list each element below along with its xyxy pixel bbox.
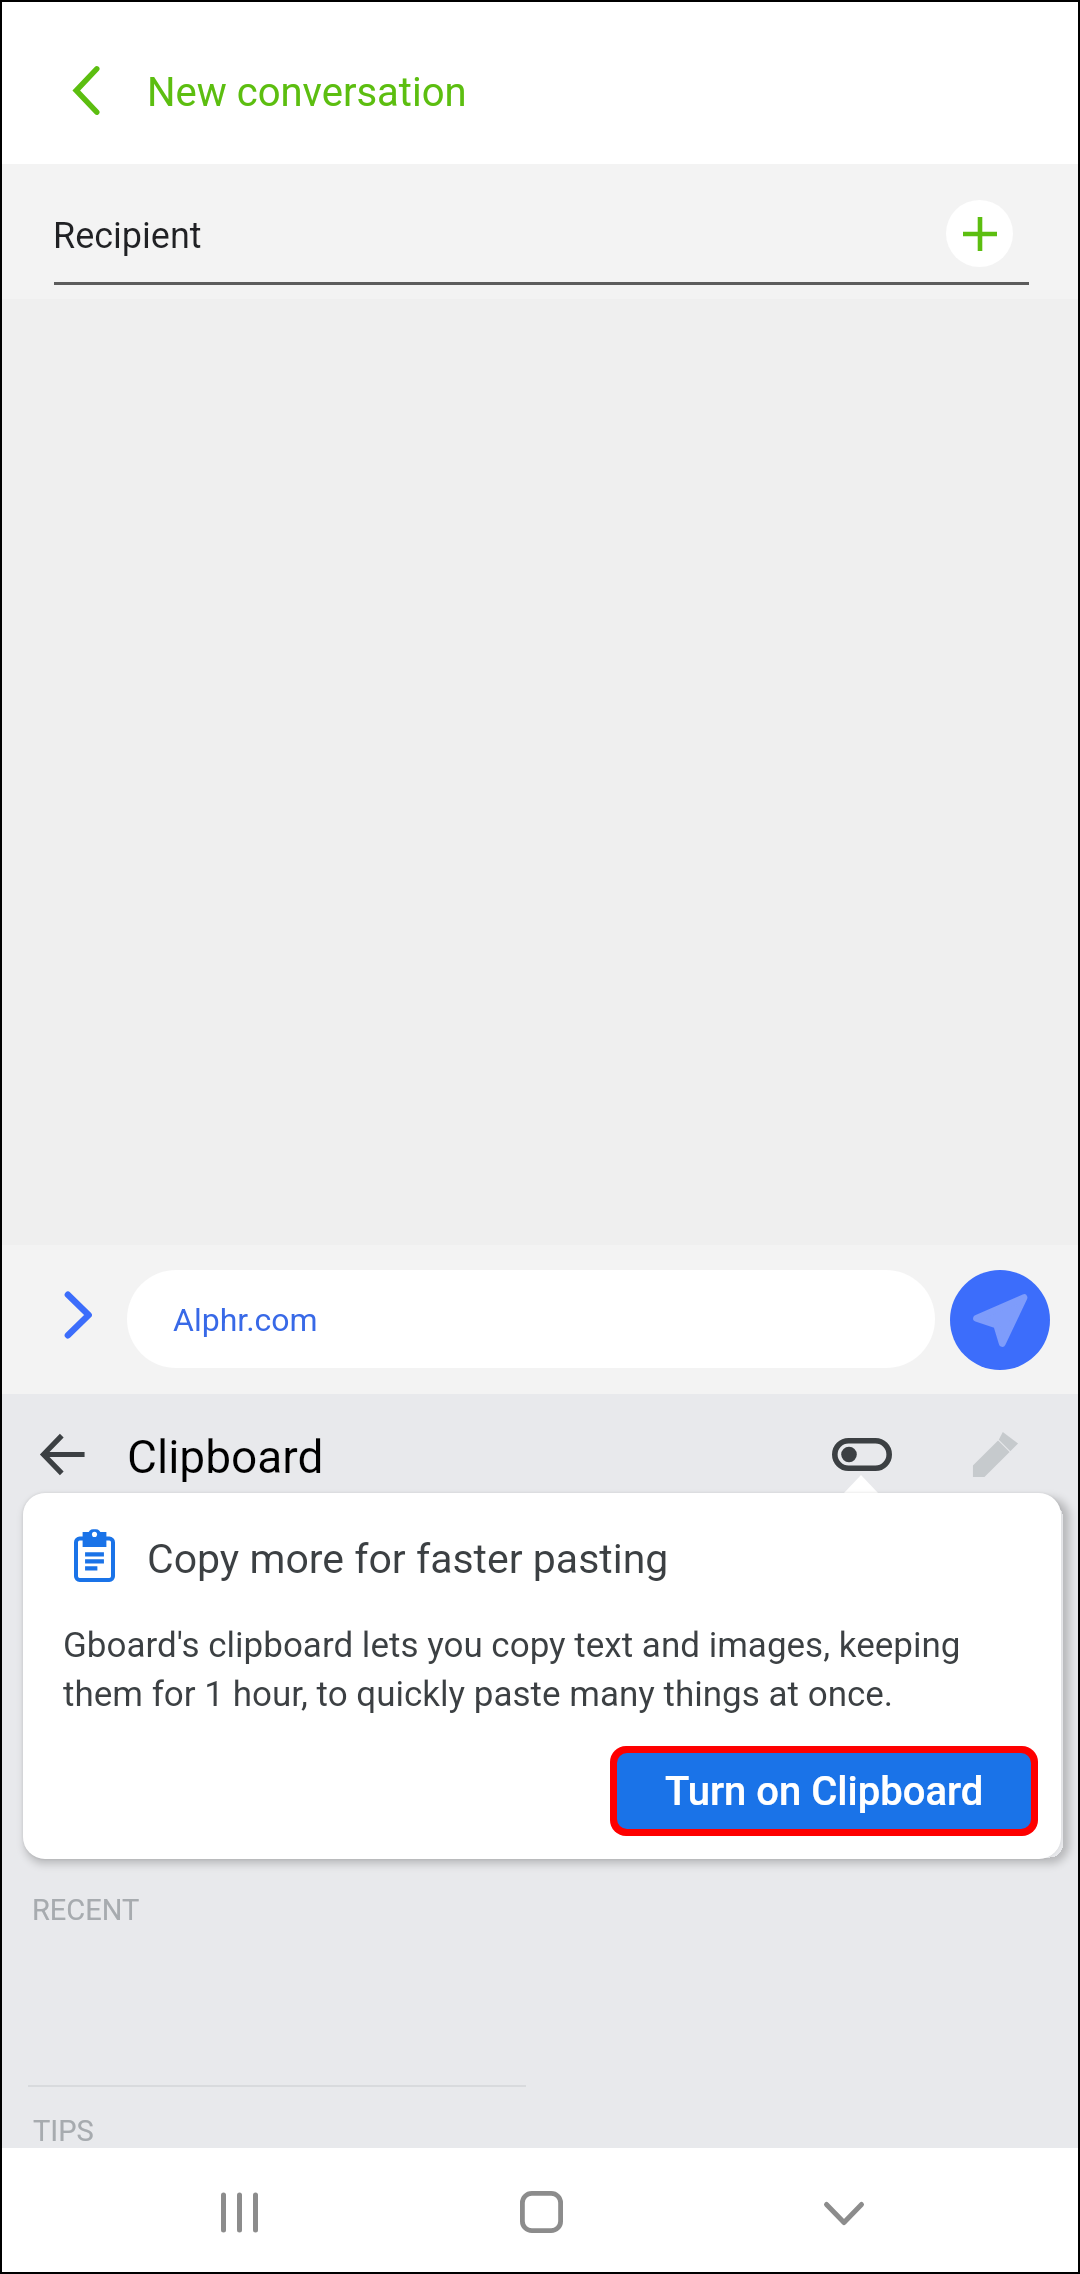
button[interactable]: Recent apps xyxy=(181,2152,301,2272)
button[interactable]: Alphr.com xyxy=(127,1270,935,1368)
staticText: RECENT xyxy=(32,1893,140,1927)
button[interactable]: Back to New conversation xyxy=(73,61,481,120)
button[interactable]: Clipboard toggle xyxy=(814,1420,910,1488)
staticText: Turn on Clipboard xyxy=(665,1768,984,1815)
button[interactable]: Home xyxy=(481,2152,601,2272)
button[interactable]: Send xyxy=(950,1270,1050,1370)
staticText: New conversation xyxy=(147,69,467,116)
staticText: Alphr.com xyxy=(173,1301,318,1339)
button[interactable]: Edit xyxy=(960,1419,1030,1489)
staticText: Gboard's clipboard lets you copy text an… xyxy=(63,1625,1003,1715)
button[interactable]: Hide keyboard xyxy=(784,2153,904,2273)
staticText: Copy more for faster pasting xyxy=(147,1535,669,1583)
button[interactable]: Expand xyxy=(50,1287,106,1343)
staticText: Recipient xyxy=(53,215,202,257)
staticText: Clipboard xyxy=(127,1430,324,1484)
button[interactable]: Add recipient xyxy=(946,200,1013,267)
button[interactable]: Turn on Clipboard xyxy=(617,1753,1031,1829)
staticText: TIPS xyxy=(33,2114,94,2148)
button[interactable]: Back xyxy=(31,1422,95,1486)
